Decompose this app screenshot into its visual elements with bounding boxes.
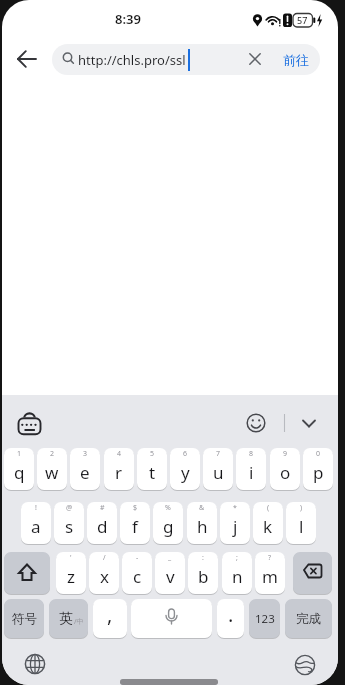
staticText: /中 <box>74 617 84 627</box>
button[interactable]: # <box>87 502 117 544</box>
staticText: ) <box>300 503 303 513</box>
staticText: v <box>166 565 175 588</box>
staticText: w <box>45 461 59 484</box>
staticText: q <box>14 461 25 484</box>
button[interactable]: - <box>122 552 152 594</box>
staticText: ? <box>268 553 272 563</box>
staticText: $ <box>133 503 138 513</box>
staticText: f <box>132 515 138 538</box>
staticText: * <box>233 503 237 513</box>
button[interactable] <box>290 650 320 680</box>
button[interactable]: 123 <box>249 599 280 638</box>
staticText: t <box>149 461 156 484</box>
staticText: o <box>280 461 291 484</box>
staticText: 3 <box>83 449 88 459</box>
staticText: ( <box>267 503 270 513</box>
staticText: d <box>97 515 108 538</box>
button[interactable]: * <box>220 502 250 544</box>
button[interactable]: 0 <box>303 448 333 490</box>
button[interactable]: % <box>153 502 183 544</box>
staticText: h <box>197 515 208 538</box>
button[interactable]: 8 <box>236 448 266 490</box>
staticText: : <box>202 553 204 563</box>
staticText: . <box>228 601 234 628</box>
staticText: 6 <box>183 449 188 459</box>
staticText: 8 <box>249 449 254 459</box>
staticText: 完成 <box>296 611 321 627</box>
button[interactable]: 完成 <box>285 599 332 638</box>
staticText: r <box>115 461 123 484</box>
button[interactable]: & <box>187 502 217 544</box>
staticText: e <box>80 461 90 484</box>
staticText: % <box>165 503 171 513</box>
button[interactable] <box>4 552 50 594</box>
staticText: ' <box>70 553 72 563</box>
staticText: m <box>262 565 278 588</box>
staticText: # <box>100 503 105 513</box>
button[interactable]: / <box>89 552 119 594</box>
staticText: 57 <box>297 14 308 26</box>
button[interactable]: @ <box>54 502 84 544</box>
staticText: z <box>67 565 75 588</box>
staticText: ; <box>236 553 238 563</box>
staticText: 前往 <box>283 52 309 68</box>
button[interactable] <box>295 409 323 437</box>
staticText: b <box>198 565 209 588</box>
button[interactable]: ( <box>253 502 283 544</box>
staticText: , <box>107 601 113 628</box>
button[interactable] <box>131 599 212 638</box>
button[interactable]: $ <box>120 502 150 544</box>
staticText: s <box>65 515 74 538</box>
button[interactable] <box>12 407 46 439</box>
button[interactable] <box>10 43 44 75</box>
staticText: c <box>133 565 142 588</box>
button[interactable]: 7 <box>203 448 233 490</box>
button[interactable]: : <box>188 552 218 594</box>
button[interactable]: 9 <box>270 448 300 490</box>
staticText: 5 <box>150 449 155 459</box>
button[interactable]: 6 <box>170 448 200 490</box>
staticText: j <box>233 515 238 538</box>
staticText: @ <box>66 503 73 513</box>
staticText: 1 <box>17 449 22 459</box>
button[interactable]: 前往 <box>274 44 318 75</box>
button[interactable]: 3 <box>70 448 100 490</box>
staticText: p <box>313 461 324 484</box>
staticText: i <box>249 461 254 484</box>
staticText: a <box>31 515 41 538</box>
staticText: k <box>263 515 273 538</box>
button[interactable]: 5 <box>137 448 167 490</box>
staticText: y <box>181 461 190 484</box>
button[interactable]: 1 <box>4 448 34 490</box>
button[interactable]: 4 <box>104 448 134 490</box>
staticText: u <box>213 461 224 484</box>
staticText: g <box>163 515 174 538</box>
button[interactable]: , <box>93 599 127 638</box>
staticText: 0 <box>316 449 321 459</box>
staticText: 2 <box>50 449 55 459</box>
staticText: 7 <box>216 449 221 459</box>
staticText: n <box>232 565 243 588</box>
button[interactable]: _ <box>155 552 185 594</box>
button[interactable]: ) <box>286 502 316 544</box>
button[interactable]: 2 <box>37 448 67 490</box>
button[interactable]: ; <box>222 552 252 594</box>
button[interactable] <box>20 649 50 679</box>
staticText: http://chls.pro/ssl <box>78 51 186 69</box>
staticText: / <box>103 553 106 563</box>
button[interactable]: . <box>217 599 244 638</box>
button[interactable] <box>52 44 320 75</box>
staticText: 英 <box>59 610 73 627</box>
button[interactable]: 符号 <box>4 599 44 638</box>
staticText: ! <box>35 503 37 513</box>
button[interactable] <box>242 409 270 437</box>
staticText: & <box>199 503 205 513</box>
staticText: 4 <box>117 449 122 459</box>
staticText: _ <box>168 553 172 563</box>
button[interactable]: ! <box>21 502 51 544</box>
staticText: l <box>299 515 304 538</box>
button[interactable]: ? <box>255 552 285 594</box>
button[interactable] <box>293 552 332 594</box>
button[interactable]: 英 <box>49 599 88 638</box>
button[interactable]: ' <box>56 552 86 594</box>
